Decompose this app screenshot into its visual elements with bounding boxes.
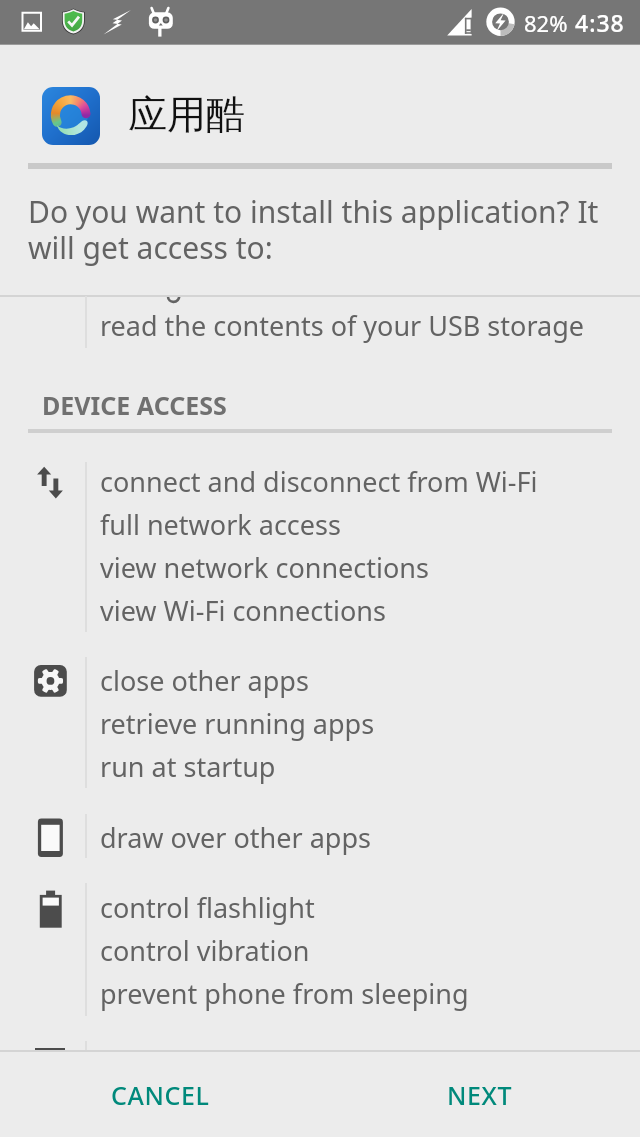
other: Security shield [62,8,86,32]
staticText: run at startup [100,748,276,785]
staticText: connect and disconnect from Wi-Fi [100,463,538,500]
staticText: read the contents of your USB storage [100,307,584,344]
staticText: Do you want to install this application?… [28,191,599,232]
staticText: control flashlight [100,889,315,926]
staticText: 4:38 [575,7,625,38]
other: Fast charging [103,9,133,39]
staticText: DEVICE ACCESS [42,388,227,422]
staticText: 应用酷 [128,90,245,139]
button[interactable]: NEXT [320,1052,640,1137]
staticText: prevent phone from sleeping [100,975,469,1012]
staticText: will get access to: [28,227,273,268]
staticText: close other apps [100,662,309,699]
other: Screenshot [21,10,43,32]
staticText: full network access [100,506,341,543]
staticText: control vibration [100,932,310,969]
staticText: draw over other apps [100,819,371,856]
staticText: 82% [524,8,568,38]
staticText: view Wi-Fi connections [100,592,386,629]
staticText: retrieve running apps [100,705,375,742]
button[interactable]: CANCEL [0,1052,320,1137]
staticText: CANCEL [111,1078,210,1112]
staticText: NEXT [447,1078,513,1112]
other: No service [446,8,476,38]
other: Battery charging [486,7,516,37]
staticText: view network connections [100,549,429,586]
other: System update [147,4,177,34]
